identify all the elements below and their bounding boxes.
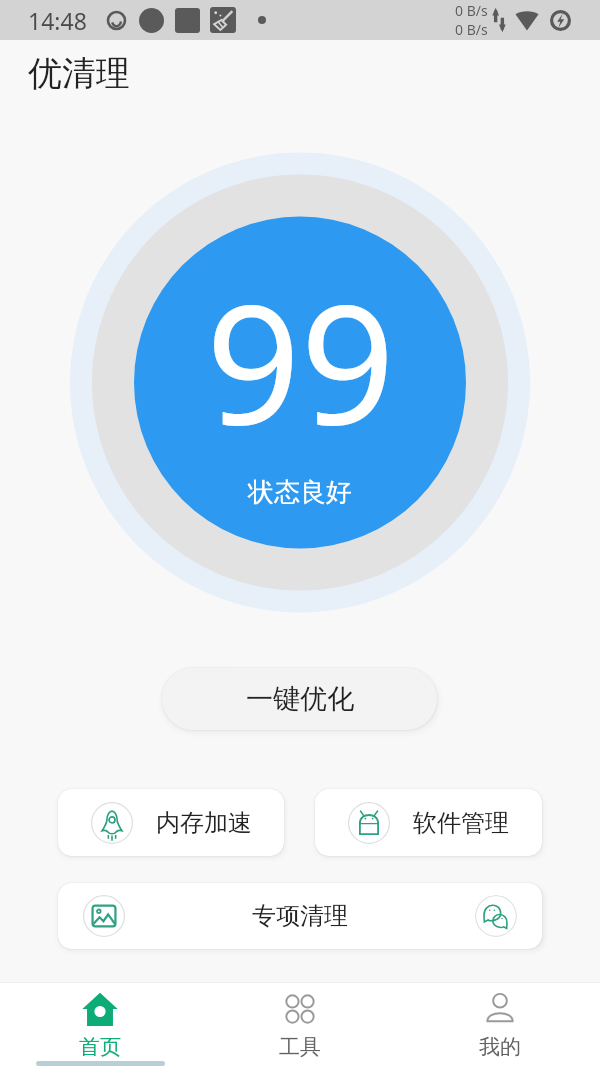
staticText: 内存加速 bbox=[156, 808, 252, 838]
staticText: 0 B/s bbox=[455, 20, 488, 39]
button[interactable]: 软件管理 bbox=[315, 789, 542, 856]
button[interactable]: 首页 bbox=[0, 983, 200, 1060]
staticText: 状态良好 bbox=[248, 476, 352, 509]
button[interactable]: 工具 bbox=[200, 983, 400, 1060]
staticText: 一键优化 bbox=[246, 682, 354, 716]
staticText: 99 bbox=[206, 248, 395, 473]
button[interactable]: 专项清理 bbox=[58, 883, 542, 949]
staticText: 首页 bbox=[79, 1034, 121, 1060]
staticText: 0 B/s bbox=[455, 1, 488, 20]
button[interactable]: 一键优化 bbox=[162, 668, 437, 730]
button[interactable]: 内存加速 bbox=[58, 789, 284, 856]
button[interactable]: 我的 bbox=[400, 983, 600, 1060]
staticText: 专项清理 bbox=[252, 901, 348, 931]
staticText: 我的 bbox=[479, 1034, 521, 1060]
staticText: 软件管理 bbox=[413, 808, 509, 838]
staticText: 工具 bbox=[279, 1034, 321, 1060]
button[interactable]: 微信清理 bbox=[475, 895, 517, 937]
staticText: 14:48 bbox=[28, 5, 87, 36]
staticText: 优清理 bbox=[28, 52, 130, 95]
